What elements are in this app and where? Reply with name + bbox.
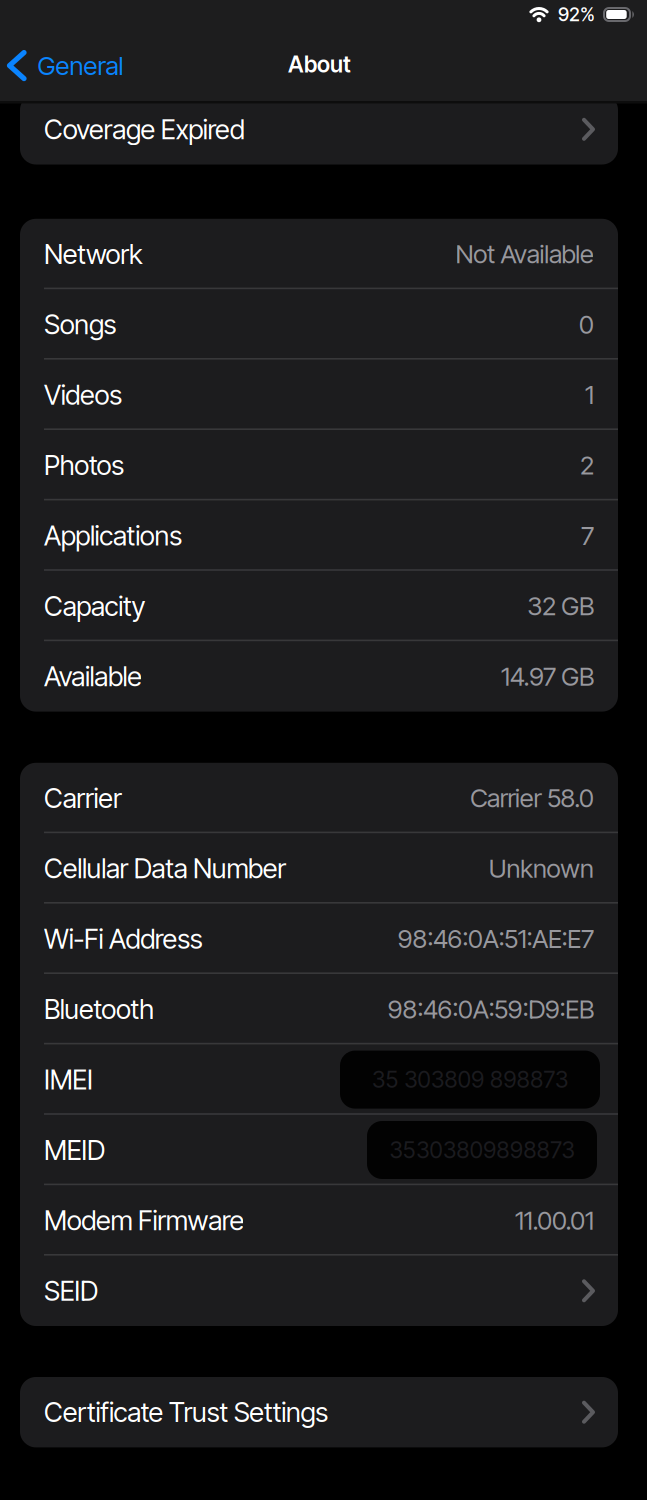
staticText: 7 [581,520,594,551]
button[interactable]: Coverage Expired [20,94,618,164]
staticText: 35 303809 898873 [372,1066,568,1093]
staticText: Not Available [456,238,594,269]
staticText: 0 [579,309,594,340]
button[interactable]: SEID [20,1256,618,1326]
staticText: Applications [44,519,182,552]
staticText: IMEI [44,1063,93,1096]
staticText: Songs [44,308,117,341]
button[interactable]: Back [6,50,123,81]
staticText: Modem Firmware [44,1204,244,1237]
staticText: SEID [44,1274,98,1307]
staticText: Available [44,660,142,693]
staticText: 2 [580,450,594,481]
staticText: 1 [585,379,594,410]
staticText: Capacity [44,589,146,622]
staticText: Unknown [489,853,594,884]
button[interactable]: Certificate Trust Settings [20,1377,618,1447]
staticText: Carrier [44,781,122,814]
staticText: 98:46:0A:59:D9:EB [388,994,594,1025]
staticText: General [37,50,123,81]
staticText: Certificate Trust Settings [44,1396,328,1429]
staticText: Wi-Fi Address [44,922,203,955]
staticText: About [288,50,351,78]
staticText: Coverage Expired [44,113,245,146]
staticText: Carrier 58.0 [470,782,594,813]
staticText: 14.97 GB [501,661,594,692]
staticText: Bluetooth [44,993,154,1026]
staticText: 11.00.01 [515,1205,594,1236]
staticText: Photos [44,449,124,482]
staticText: 32 GB [527,590,594,621]
staticText: MEID [44,1133,105,1166]
staticText: 35303809898873 [389,1136,575,1164]
staticText: Network [44,237,143,270]
staticText: 98:46:0A:51:AE:E7 [398,923,594,954]
staticText: Cellular Data Number [44,852,286,885]
staticText: Videos [44,378,122,411]
staticText: 92% [558,3,595,26]
